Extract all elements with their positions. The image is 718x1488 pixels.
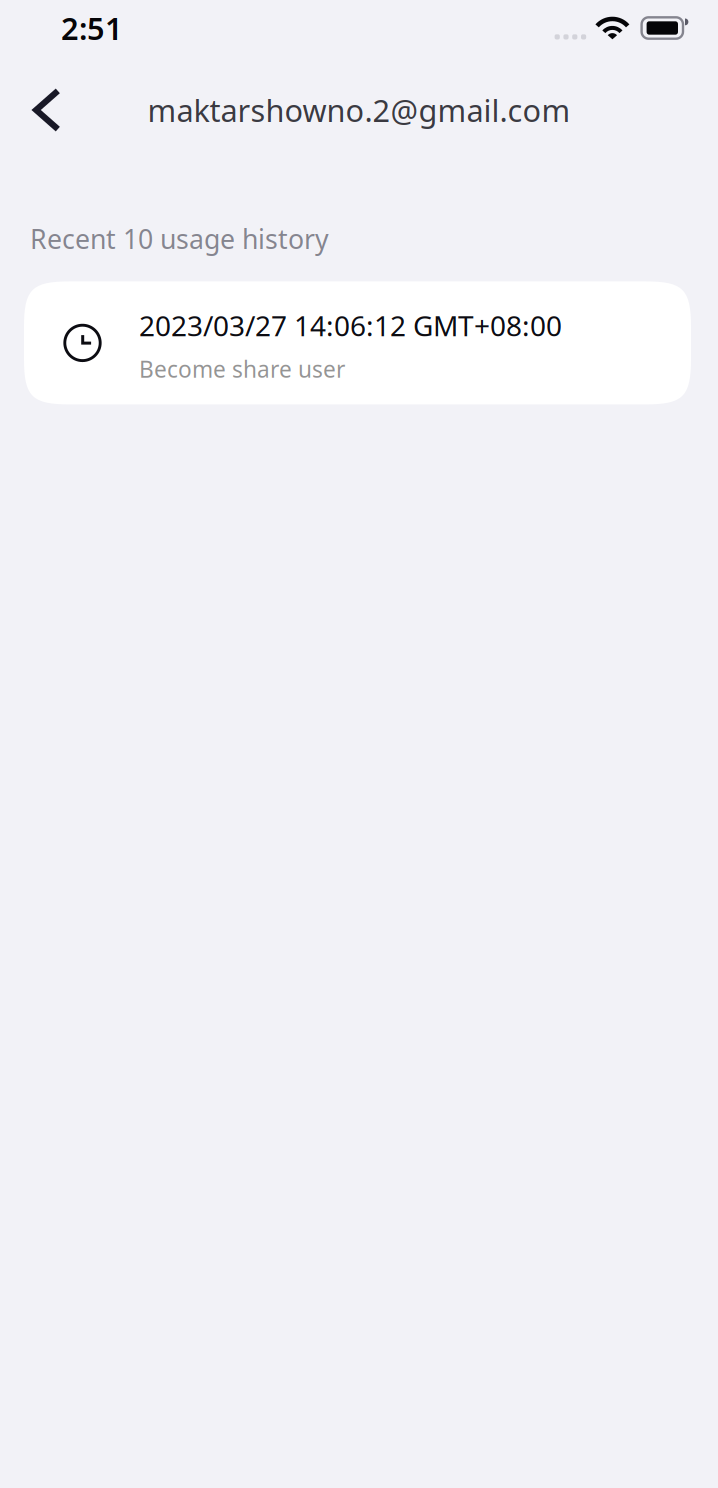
staticText: 2:51 xyxy=(61,8,123,48)
button[interactable]: Back xyxy=(0,76,87,144)
button[interactable]: 2023/03/27 14:06:12 GMT+08:00 xyxy=(24,281,691,404)
staticText: maktarshowno.2@gmail.com xyxy=(147,90,570,130)
staticText: Become share user xyxy=(139,354,345,384)
staticText: 2023/03/27 14:06:12 GMT+08:00 xyxy=(139,307,562,344)
staticText: Recent 10 usage history xyxy=(30,221,329,256)
